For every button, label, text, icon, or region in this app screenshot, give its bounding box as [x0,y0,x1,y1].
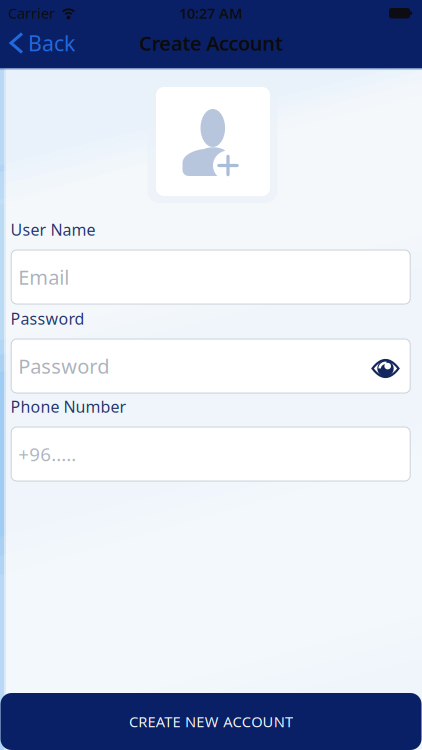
button[interactable]: CREATE NEW ACCOUNT [0,693,421,750]
staticText: Password [18,353,109,379]
staticText: Carrier [8,3,55,23]
staticText: +96..... [18,442,76,466]
button[interactable]: Password [11,339,410,393]
button[interactable] [146,77,278,203]
staticText: Password [10,308,84,329]
staticText: Back [28,29,75,57]
staticText: 10:27 AM [179,3,243,23]
button[interactable]: Email [11,250,410,304]
staticText: Phone Number [10,396,126,417]
staticText: Email [18,264,69,290]
button[interactable]: +96..... [11,427,410,481]
staticText: Create Account [139,30,283,56]
staticText: CREATE NEW ACCOUNT [129,712,293,731]
button[interactable]: Back [11,26,111,60]
staticText: User Name [10,219,95,240]
